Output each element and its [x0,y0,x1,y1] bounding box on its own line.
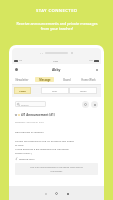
staticText: Search [21,103,29,106]
staticText: 4/1 Announcement (#1) [21,113,55,117]
button[interactable]: Menu [15,68,18,71]
button[interactable]: AMBC [14,87,31,94]
staticText: This is an announcement to the whole cla… [30,166,83,172]
button[interactable]: Board [57,74,76,84]
staticText: fieldtrip.docx [19,157,35,160]
button[interactable]: Recent apps [64,190,71,197]
staticText: Message [39,78,51,82]
staticText: Newsletter [15,78,29,82]
staticText: 78% [89,59,93,62]
staticText: LTE [19,59,23,62]
button[interactable]: Compose message [91,101,98,108]
button[interactable]: Newsletter [12,74,32,84]
staticText: Receive announcements and private messag… [16,21,98,31]
staticText: STAY CONNECTED [36,8,78,14]
button[interactable]: Home Work [79,74,98,84]
button[interactable]: Home [53,190,60,197]
staticText: AMBC [19,89,27,92]
staticText: Inbox [80,89,87,92]
button[interactable]: Message [35,74,54,84]
staticText: Home Work [81,78,96,82]
staticText: Sent [52,89,58,92]
button[interactable]: Sent [41,87,69,94]
button[interactable]: More options [95,68,98,71]
staticText: Received : 2019-04-01 8:44 [15,121,44,124]
staticText: Board [63,78,71,82]
staticText: Dear parents & students We will be trave… [15,130,75,154]
button[interactable]: Refresh [82,101,89,108]
button[interactable]: Inbox [69,87,97,94]
button[interactable]: Back [42,190,49,197]
button[interactable]: Search [15,101,46,107]
staticText: Abby [52,67,61,72]
staticText: 7:05 [53,59,58,62]
button[interactable]: fieldtrip.docx [15,157,35,160]
